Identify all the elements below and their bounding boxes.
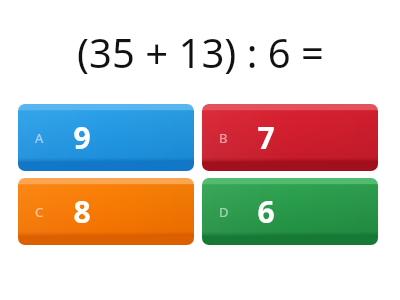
staticText: 7	[257, 117, 275, 158]
button[interactable]: C	[18, 178, 194, 245]
staticText: (35 + 13) : 6 =	[77, 25, 324, 79]
button[interactable]: A	[18, 104, 194, 171]
staticText: 9	[73, 117, 91, 158]
button[interactable]: B	[202, 104, 378, 171]
staticText: D	[219, 203, 229, 221]
staticText: C	[35, 203, 44, 221]
staticText: 8	[73, 191, 91, 232]
staticText: 6	[257, 191, 275, 232]
button[interactable]: D	[202, 178, 378, 245]
staticText: A	[35, 129, 44, 147]
staticText: B	[219, 129, 228, 147]
